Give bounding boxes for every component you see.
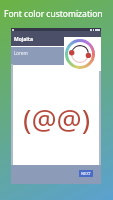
staticText: (@@) — [23, 100, 91, 138]
staticText: Mojaita — [14, 36, 33, 43]
button[interactable]: Color picker — [64, 37, 101, 71]
staticText: Font color customization — [4, 8, 103, 20]
button[interactable]: NEXT — [79, 170, 93, 177]
staticText: Lorem — [14, 50, 28, 56]
staticText: NEXT — [81, 171, 91, 176]
